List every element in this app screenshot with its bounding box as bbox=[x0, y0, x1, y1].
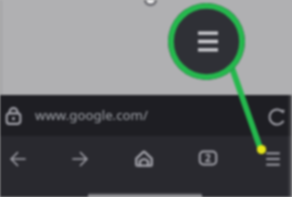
staticText: 2 bbox=[205, 151, 211, 165]
button[interactable]: Forward bbox=[64, 143, 96, 175]
button[interactable]: More options menu bbox=[168, 3, 245, 80]
button[interactable]: Site information bbox=[0, 95, 292, 136]
button[interactable]: More options bbox=[257, 143, 289, 175]
button[interactable]: Home bbox=[128, 143, 160, 175]
button[interactable]: Open tabs, 2 bbox=[193, 143, 223, 173]
button[interactable]: Reload page bbox=[266, 106, 288, 128]
staticText: www.google.com/ bbox=[35, 106, 148, 124]
button[interactable]: Back bbox=[2, 143, 34, 175]
other: Site information bbox=[0, 95, 292, 136]
